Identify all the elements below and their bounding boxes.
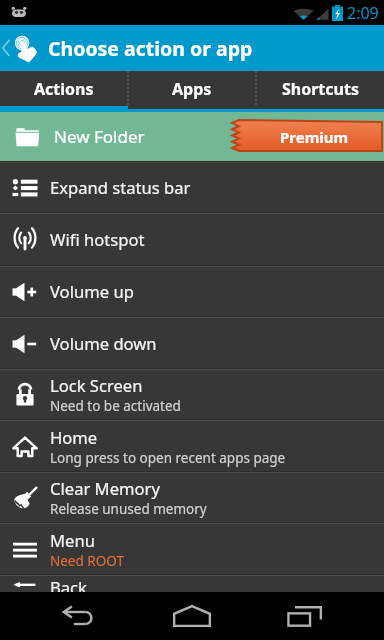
staticText: Apps <box>172 78 212 100</box>
staticText: 2:09 <box>347 2 379 24</box>
button[interactable]: Clear Memory <box>0 473 384 522</box>
staticText: Shortcuts <box>282 78 359 100</box>
button[interactable]: New Folder <box>0 112 384 161</box>
staticText: Lock Screen <box>50 374 143 397</box>
staticText: Need to be activated <box>50 397 181 415</box>
button[interactable]: Volume down <box>0 318 384 368</box>
button[interactable]: Menu <box>0 524 384 574</box>
button[interactable]: Lock Screen <box>0 370 384 419</box>
staticText: Menu <box>50 529 95 552</box>
staticText: Clear Memory <box>50 477 160 500</box>
staticText: Volume up <box>50 280 134 303</box>
button[interactable]: Recent apps <box>256 592 384 640</box>
button[interactable]: Wifi hotspot <box>0 214 384 265</box>
button[interactable]: Back <box>0 576 384 592</box>
button[interactable]: Home <box>0 421 384 471</box>
staticText: Choose action or app <box>48 35 253 62</box>
button[interactable]: Expand status bar <box>0 163 384 212</box>
button[interactable]: Home <box>128 592 256 640</box>
button[interactable]: Back <box>0 592 128 640</box>
staticText: New Folder <box>54 125 145 148</box>
staticText: Expand status bar <box>50 176 191 199</box>
staticText: Home <box>50 426 98 449</box>
button[interactable]: Actions <box>0 71 128 106</box>
staticText: Release unused memory <box>50 500 207 518</box>
button[interactable]: Navigate up <box>0 25 44 71</box>
button[interactable]: Shortcuts <box>256 71 384 106</box>
staticText: Back <box>50 576 87 592</box>
button[interactable]: Premium <box>232 121 382 152</box>
staticText: Wifi hotspot <box>50 228 145 251</box>
staticText: Premium <box>280 127 349 147</box>
staticText: Long press to open recent apps page <box>50 449 286 467</box>
button[interactable]: Apps <box>128 71 256 106</box>
staticText: Need ROOT <box>50 552 124 570</box>
staticText: Volume down <box>50 332 157 355</box>
button[interactable]: Volume up <box>0 267 384 316</box>
staticText: Actions <box>34 78 94 100</box>
